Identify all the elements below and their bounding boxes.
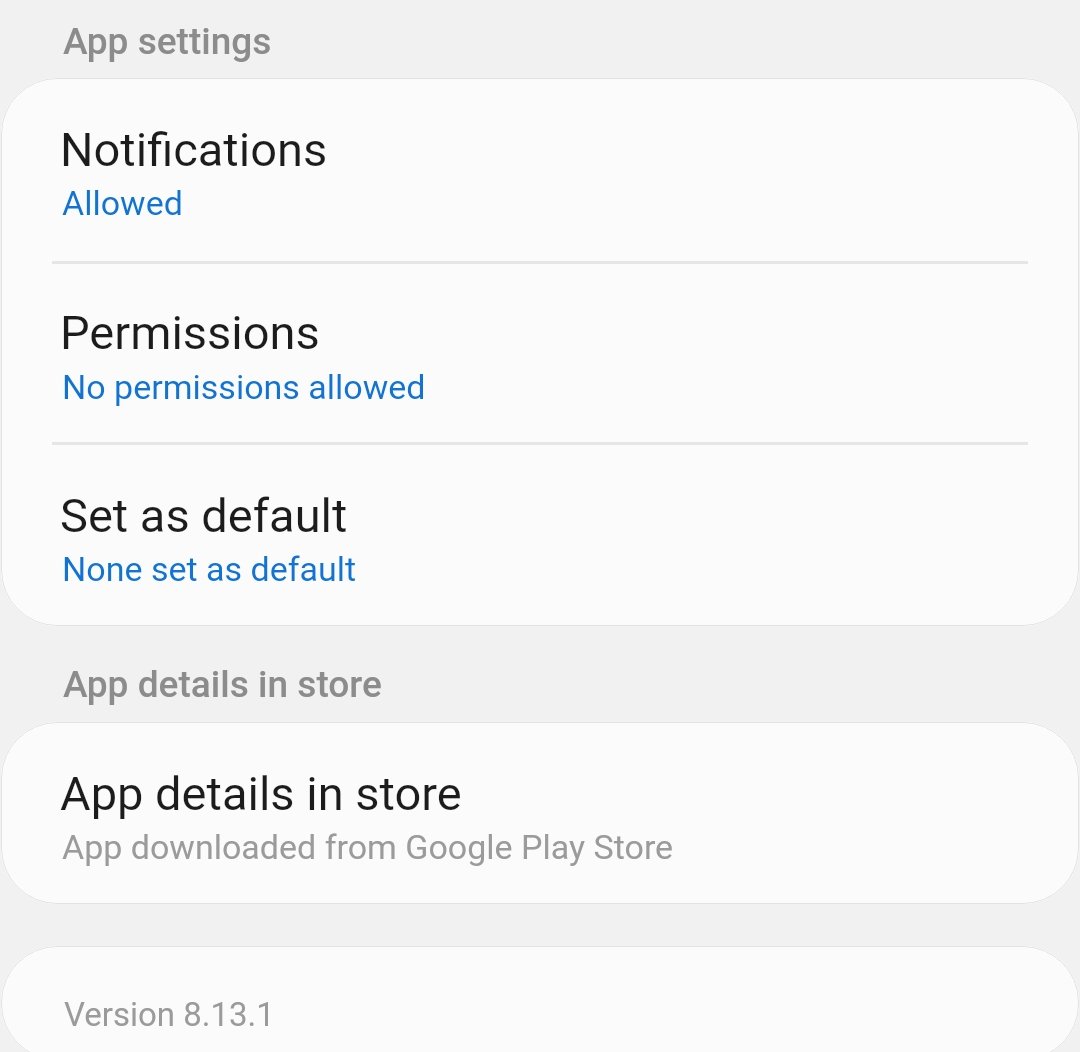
staticText: Set as default	[60, 488, 348, 543]
staticText: Notifications	[60, 122, 328, 177]
staticText: Permissions	[60, 305, 320, 360]
staticText: App details in store	[60, 766, 462, 821]
button[interactable]: Notifications	[0, 78, 1080, 262]
staticText: No permissions allowed	[62, 367, 426, 407]
staticText: Allowed	[62, 183, 183, 223]
staticText: App settings	[63, 20, 272, 63]
staticText: None set as default	[62, 549, 357, 589]
staticText: App details in store	[63, 663, 382, 706]
button[interactable]: App details in store	[0, 722, 1080, 904]
staticText: Version 8.13.1	[64, 995, 275, 1034]
staticText: App downloaded from Google Play Store	[62, 827, 674, 867]
button[interactable]: Set as default	[0, 443, 1080, 626]
button[interactable]: Permissions	[0, 262, 1080, 443]
